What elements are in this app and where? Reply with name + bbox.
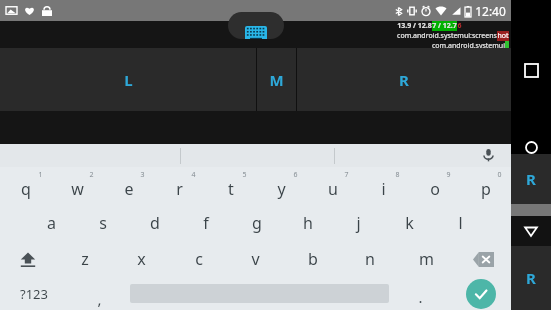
button[interactable]: o bbox=[409, 167, 460, 205]
button[interactable]: x bbox=[113, 241, 170, 277]
staticText: s bbox=[99, 212, 107, 234]
staticText: 9 bbox=[446, 170, 451, 180]
staticText: R bbox=[526, 169, 536, 189]
staticText: u bbox=[328, 178, 338, 200]
staticText: . bbox=[418, 287, 423, 307]
button[interactable]: , bbox=[68, 277, 130, 310]
button[interactable]: e bbox=[103, 167, 154, 205]
staticText: f bbox=[203, 212, 209, 234]
staticText: z bbox=[81, 248, 89, 270]
button[interactable]: R bbox=[511, 246, 551, 310]
staticText: m bbox=[419, 248, 434, 270]
button[interactable]: a bbox=[25, 205, 77, 241]
button[interactable]: Shift bbox=[0, 241, 56, 277]
button[interactable]: t bbox=[205, 167, 256, 205]
staticText: 2 bbox=[89, 170, 94, 180]
staticText: g bbox=[252, 212, 262, 234]
button[interactable]: Keyboard bbox=[228, 12, 284, 39]
button[interactable]: i bbox=[358, 167, 409, 205]
button[interactable]: q bbox=[0, 167, 52, 205]
staticText: b bbox=[308, 248, 318, 270]
button[interactable]: Voice input bbox=[335, 144, 511, 167]
staticText: R bbox=[399, 70, 409, 90]
button[interactable]: u bbox=[307, 167, 358, 205]
staticText: ?123 bbox=[20, 285, 48, 303]
other: Voice input bbox=[482, 149, 495, 162]
staticText: h bbox=[303, 212, 313, 234]
staticText: k bbox=[405, 212, 414, 234]
staticText: 8 bbox=[395, 170, 400, 180]
button[interactable]: s bbox=[77, 205, 129, 241]
staticText: 6 bbox=[293, 170, 298, 180]
staticText: i bbox=[381, 178, 386, 200]
button[interactable]: j bbox=[333, 205, 384, 241]
button[interactable]: h bbox=[282, 205, 333, 241]
button[interactable]: L bbox=[0, 48, 256, 111]
staticText: 0 bbox=[497, 170, 502, 180]
staticText: 12:40 bbox=[475, 3, 506, 19]
button[interactable]: M bbox=[257, 48, 296, 111]
button[interactable]: l bbox=[435, 205, 486, 241]
staticText: 5 bbox=[242, 170, 247, 180]
button[interactable]: d bbox=[129, 205, 180, 241]
staticText: w bbox=[71, 178, 84, 200]
staticText: R bbox=[526, 268, 536, 288]
button[interactable]: Back bbox=[511, 216, 551, 246]
staticText: , bbox=[97, 289, 102, 309]
staticText: 3 bbox=[140, 170, 145, 180]
button[interactable]: c bbox=[170, 241, 227, 277]
button[interactable]: p bbox=[460, 167, 511, 205]
button[interactable]: R bbox=[297, 48, 511, 111]
staticText: o bbox=[430, 178, 440, 200]
button[interactable]: w bbox=[52, 167, 103, 205]
staticText: v bbox=[251, 248, 260, 270]
staticText: M bbox=[269, 70, 284, 90]
staticText: com.android.systemui bbox=[432, 41, 505, 48]
button[interactable]: Enter bbox=[451, 277, 511, 310]
button[interactable]: . bbox=[389, 277, 451, 310]
staticText: r bbox=[176, 178, 183, 200]
staticText: c bbox=[195, 248, 203, 270]
staticText: p bbox=[481, 178, 491, 200]
staticText: 13.9 / 12.8 bbox=[397, 21, 432, 31]
button[interactable]: ?123 bbox=[0, 277, 68, 310]
button[interactable]: k bbox=[384, 205, 435, 241]
staticText: d bbox=[150, 212, 160, 234]
button[interactable]: v bbox=[227, 241, 284, 277]
staticText: 6 bbox=[457, 21, 462, 31]
button[interactable]: y bbox=[256, 167, 307, 205]
staticText: 1 bbox=[38, 170, 43, 180]
staticText: n bbox=[365, 248, 375, 270]
staticText: t bbox=[228, 178, 234, 200]
button[interactable]: Delete bbox=[455, 241, 511, 277]
button[interactable]: m bbox=[398, 241, 455, 277]
staticText: a bbox=[47, 212, 56, 234]
staticText: hot bbox=[497, 31, 509, 41]
button[interactable]: z bbox=[56, 241, 113, 277]
staticText: q bbox=[21, 178, 31, 200]
staticText: com.android.systemui:screens bbox=[397, 31, 497, 41]
staticText: L bbox=[124, 70, 133, 90]
staticText: 7 bbox=[344, 170, 349, 180]
staticText: 4 bbox=[191, 170, 196, 180]
button[interactable]: Recents bbox=[511, 58, 551, 82]
staticText: x bbox=[137, 248, 146, 270]
button[interactable]: g bbox=[231, 205, 282, 241]
button[interactable]: f bbox=[180, 205, 231, 241]
staticText: 7 / 12.7 bbox=[432, 21, 457, 31]
button[interactable]: Home bbox=[511, 140, 551, 154]
button[interactable]: r bbox=[154, 167, 205, 205]
button[interactable]: b bbox=[284, 241, 341, 277]
staticText: y bbox=[277, 178, 286, 200]
staticText: l bbox=[458, 212, 463, 234]
staticText: j bbox=[356, 212, 361, 234]
button[interactable]: n bbox=[341, 241, 398, 277]
staticText: e bbox=[124, 178, 134, 200]
button[interactable]: R bbox=[511, 154, 551, 204]
